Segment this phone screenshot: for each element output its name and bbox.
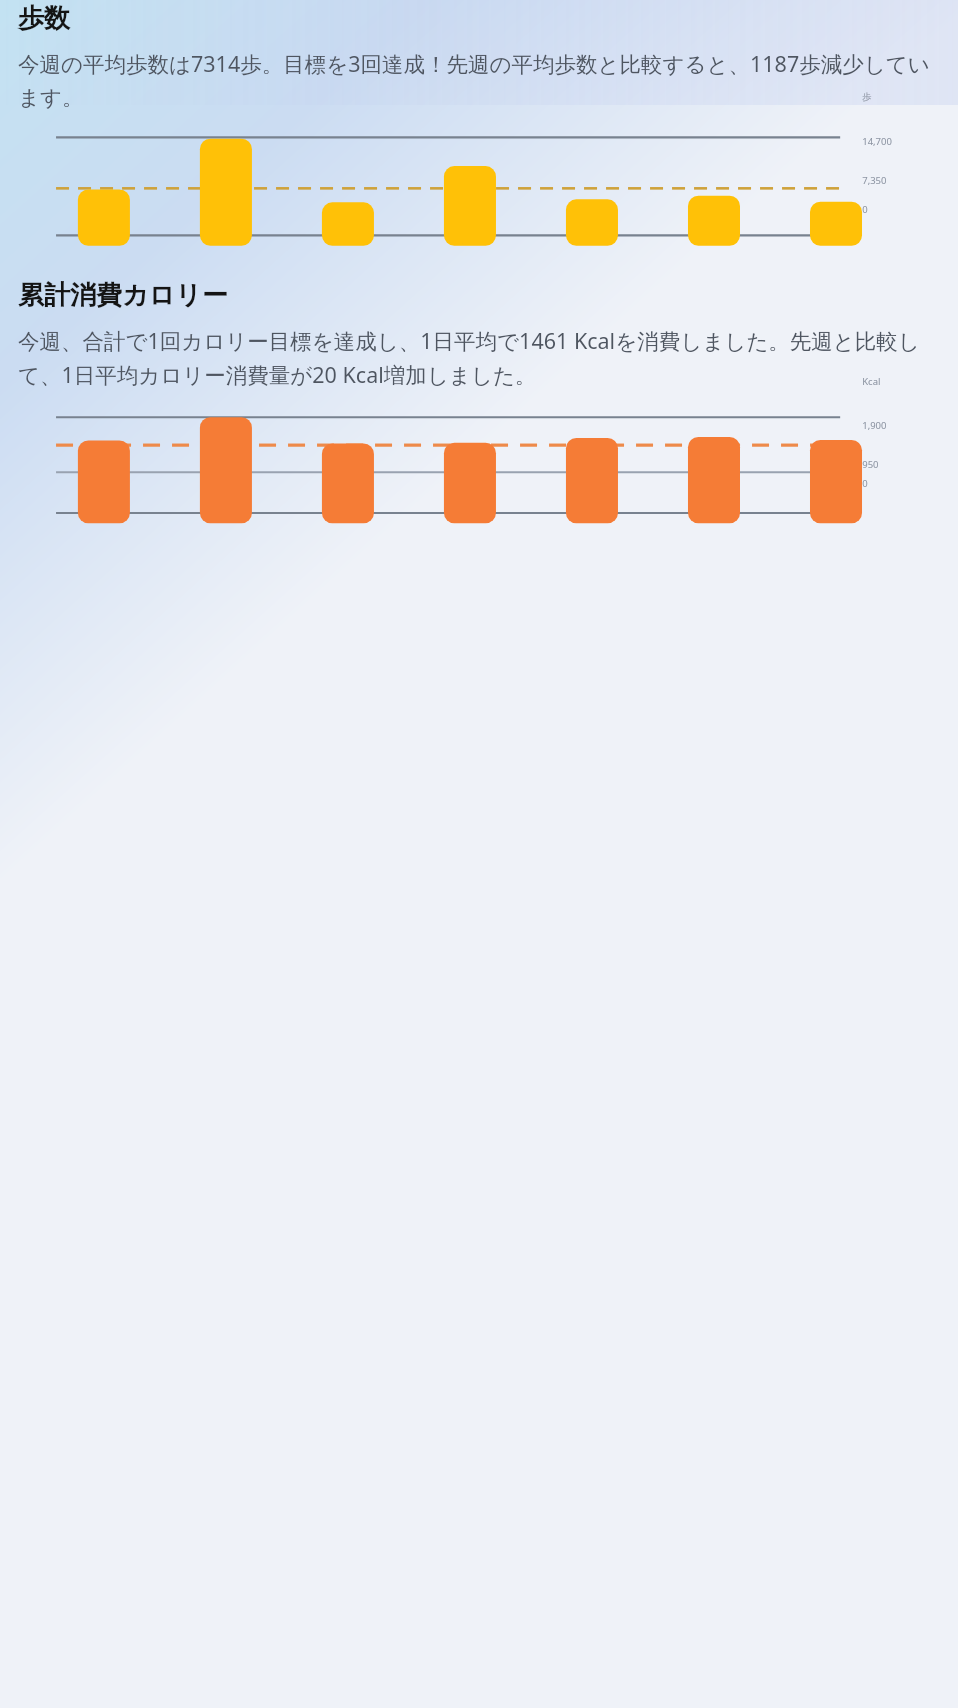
staticText: 今週の平均歩数は7314歩。目標を3回達成！先週の平均歩数と比較すると、1187…	[18, 49, 944, 111]
button[interactable]: 累計消費カロリー	[0, 243, 958, 312]
button[interactable]: 歩数	[0, 0, 958, 35]
staticText: 今週、合計で1回カロリー目標を達成し、1日平均で1461 Kcalを消費しました…	[18, 326, 944, 389]
